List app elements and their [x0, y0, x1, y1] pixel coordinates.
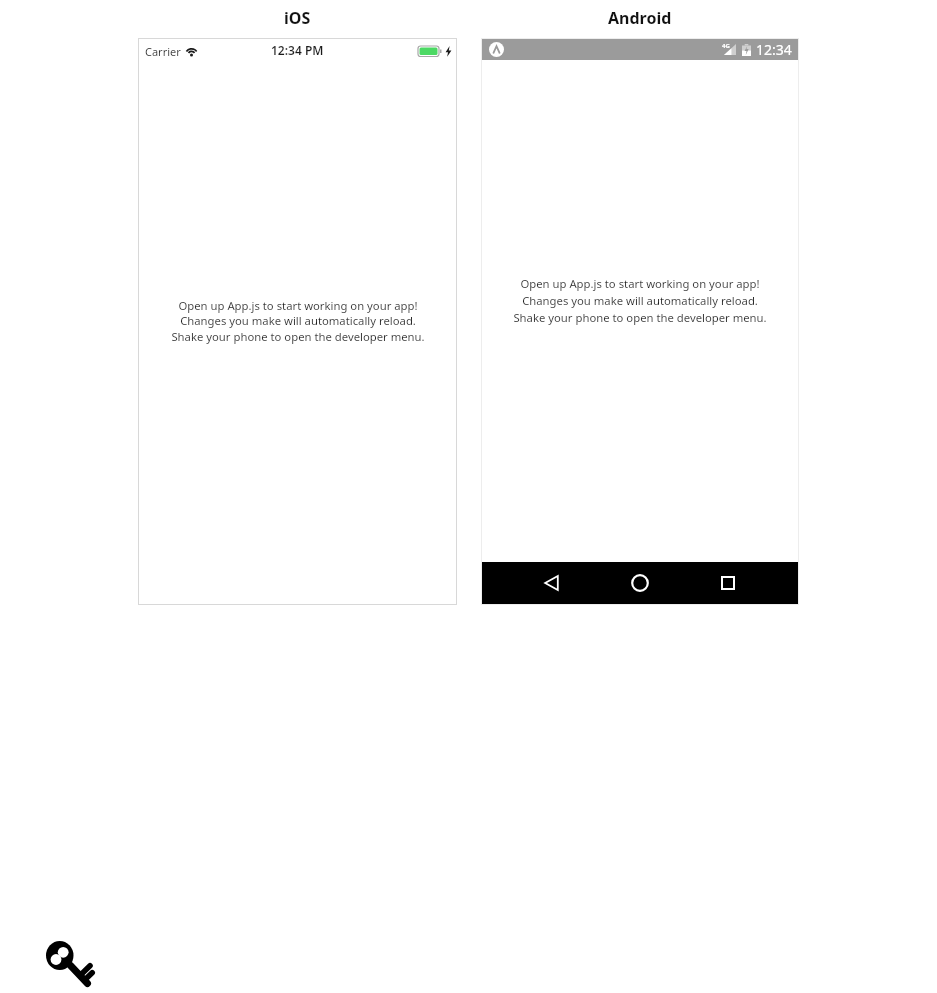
staticText: Open up App.js to start working on your … — [513, 276, 767, 326]
staticText: Android — [608, 7, 672, 29]
button[interactable] — [631, 574, 649, 592]
button[interactable] — [721, 576, 735, 590]
button[interactable] — [544, 575, 559, 591]
staticText: 12:34 PM — [271, 42, 324, 58]
staticText: 4G — [722, 42, 730, 50]
button[interactable] — [489, 42, 504, 57]
staticText: Carrier — [145, 44, 181, 58]
staticText: iOS — [284, 7, 311, 29]
staticText: 12:34 — [756, 40, 792, 59]
staticText: Open up App.js to start working on your … — [171, 298, 425, 344]
